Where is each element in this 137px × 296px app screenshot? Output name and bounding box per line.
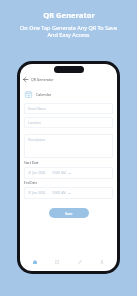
button[interactable]: Scan — [50, 255, 64, 269]
staticText: 10:00 AM — [52, 191, 66, 195]
staticText: Start Date — [24, 161, 39, 165]
staticText: 21 Jun 2024 — [28, 171, 46, 175]
staticText: On One Tap Generate Any QR To Save And E… — [20, 24, 117, 38]
other: Back — [23, 77, 28, 82]
button[interactable]: Profile — [95, 255, 109, 269]
other: Profile — [100, 260, 104, 264]
button[interactable]: Home — [28, 255, 42, 269]
button[interactable]: Back — [23, 74, 117, 85]
other: Home — [33, 260, 37, 264]
staticText: Save — [65, 211, 73, 216]
staticText: 10:00 AM — [52, 171, 66, 175]
staticText: 21 Jun 2024 — [28, 191, 46, 195]
button[interactable]: 21 Jun 2024 — [24, 187, 113, 199]
staticText: End Date — [24, 181, 38, 185]
staticText: QR Generator — [31, 77, 54, 82]
staticText: Description — [28, 138, 46, 142]
other: Edit — [78, 260, 82, 264]
button[interactable]: 21 Jun 2024 — [24, 167, 113, 179]
button[interactable]: Calendar — [25, 88, 117, 100]
other: Scan — [55, 260, 59, 264]
staticText: QR Generator — [43, 10, 95, 20]
button[interactable]: Event Name — [24, 103, 113, 114]
button[interactable]: Edit — [73, 255, 87, 269]
button[interactable]: Description — [24, 134, 113, 158]
button[interactable]: Location — [24, 117, 113, 128]
staticText: Location — [28, 121, 41, 125]
staticText: Calendar — [36, 92, 52, 97]
staticText: Event Name — [28, 107, 47, 111]
button[interactable]: Save — [49, 208, 89, 218]
